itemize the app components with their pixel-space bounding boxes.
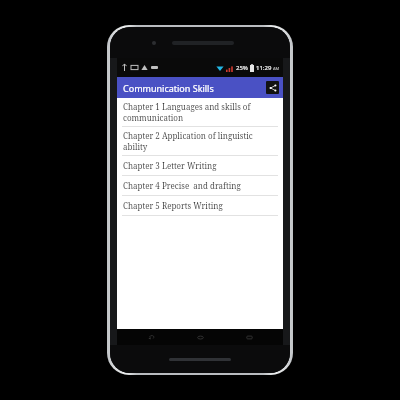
staticText: 25% xyxy=(236,64,248,72)
staticText: Chapter 5 Reports Writing xyxy=(123,200,223,211)
button[interactable]: Chapter 4 Precise and drafting xyxy=(117,176,283,196)
staticText: Chapter 2 Application of linguistic abil… xyxy=(123,130,277,152)
button[interactable]: Chapter 2 Application of linguistic abil… xyxy=(117,127,283,156)
button[interactable]: Chapter 1 Languages and skills of commun… xyxy=(117,98,283,127)
staticText: Chapter 1 Languages and skills of commun… xyxy=(123,101,277,123)
staticText: AM xyxy=(273,66,280,71)
button[interactable]: Chapter 5 Reports Writing xyxy=(117,196,283,216)
button[interactable]: Home xyxy=(185,329,215,345)
staticText: Chapter 4 Precise and drafting xyxy=(123,180,241,191)
button[interactable]: Recent apps xyxy=(234,329,264,345)
button[interactable]: Chapter 3 Letter Writing xyxy=(117,156,283,176)
staticText: Communication Skills xyxy=(123,82,214,94)
staticText: Chapter 3 Letter Writing xyxy=(123,160,217,171)
button[interactable]: Share xyxy=(266,81,279,94)
staticText: 11:29 xyxy=(256,64,272,72)
button[interactable]: Back xyxy=(136,329,166,345)
